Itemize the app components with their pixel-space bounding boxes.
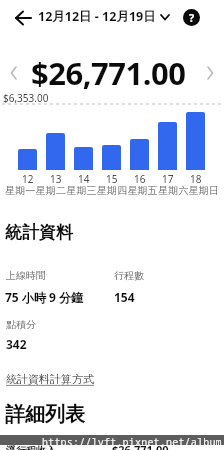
staticText: 12月12日 - 12月19日 — [38, 8, 156, 25]
staticText: 行程數 — [114, 269, 144, 282]
staticText: 342 — [6, 336, 27, 352]
staticText: $6,353.00 — [3, 91, 49, 105]
button[interactable]: 12月12日 - 12月19日 — [38, 8, 170, 25]
staticText: 75 小時 9 分鐘 — [5, 289, 83, 305]
button[interactable]: ? — [183, 9, 200, 26]
staticText: $26,771.00 — [112, 442, 169, 450]
staticText: 15 — [106, 172, 118, 186]
staticText: 12 — [22, 172, 34, 186]
staticText: 點積分 — [6, 318, 36, 331]
staticText: 18 — [190, 172, 202, 186]
button[interactable] — [6, 62, 22, 84]
staticText: 統計資料計算方式 — [6, 372, 94, 386]
staticText: 詳細列表 — [5, 402, 85, 427]
staticText: 14 — [78, 172, 90, 186]
button[interactable]: 統計資料計算方式 — [6, 372, 94, 386]
button[interactable] — [202, 62, 218, 84]
staticText: 13 — [50, 172, 62, 186]
staticText: 淨行程收入 — [6, 444, 56, 450]
staticText: https://lyft.pixnet.net/album — [42, 435, 222, 445]
staticText: 星期一星期二星期三星期四星期五星期六星期日 — [5, 184, 220, 197]
staticText: ? — [189, 10, 195, 25]
button[interactable] — [12, 6, 36, 30]
staticText: 154 — [114, 289, 135, 305]
staticText: 統計資料 — [5, 222, 73, 243]
staticText: 17 — [162, 172, 174, 186]
staticText: 16 — [134, 172, 146, 186]
staticText: 上線時間 — [6, 269, 46, 282]
staticText: $26,771.00 — [31, 52, 186, 90]
